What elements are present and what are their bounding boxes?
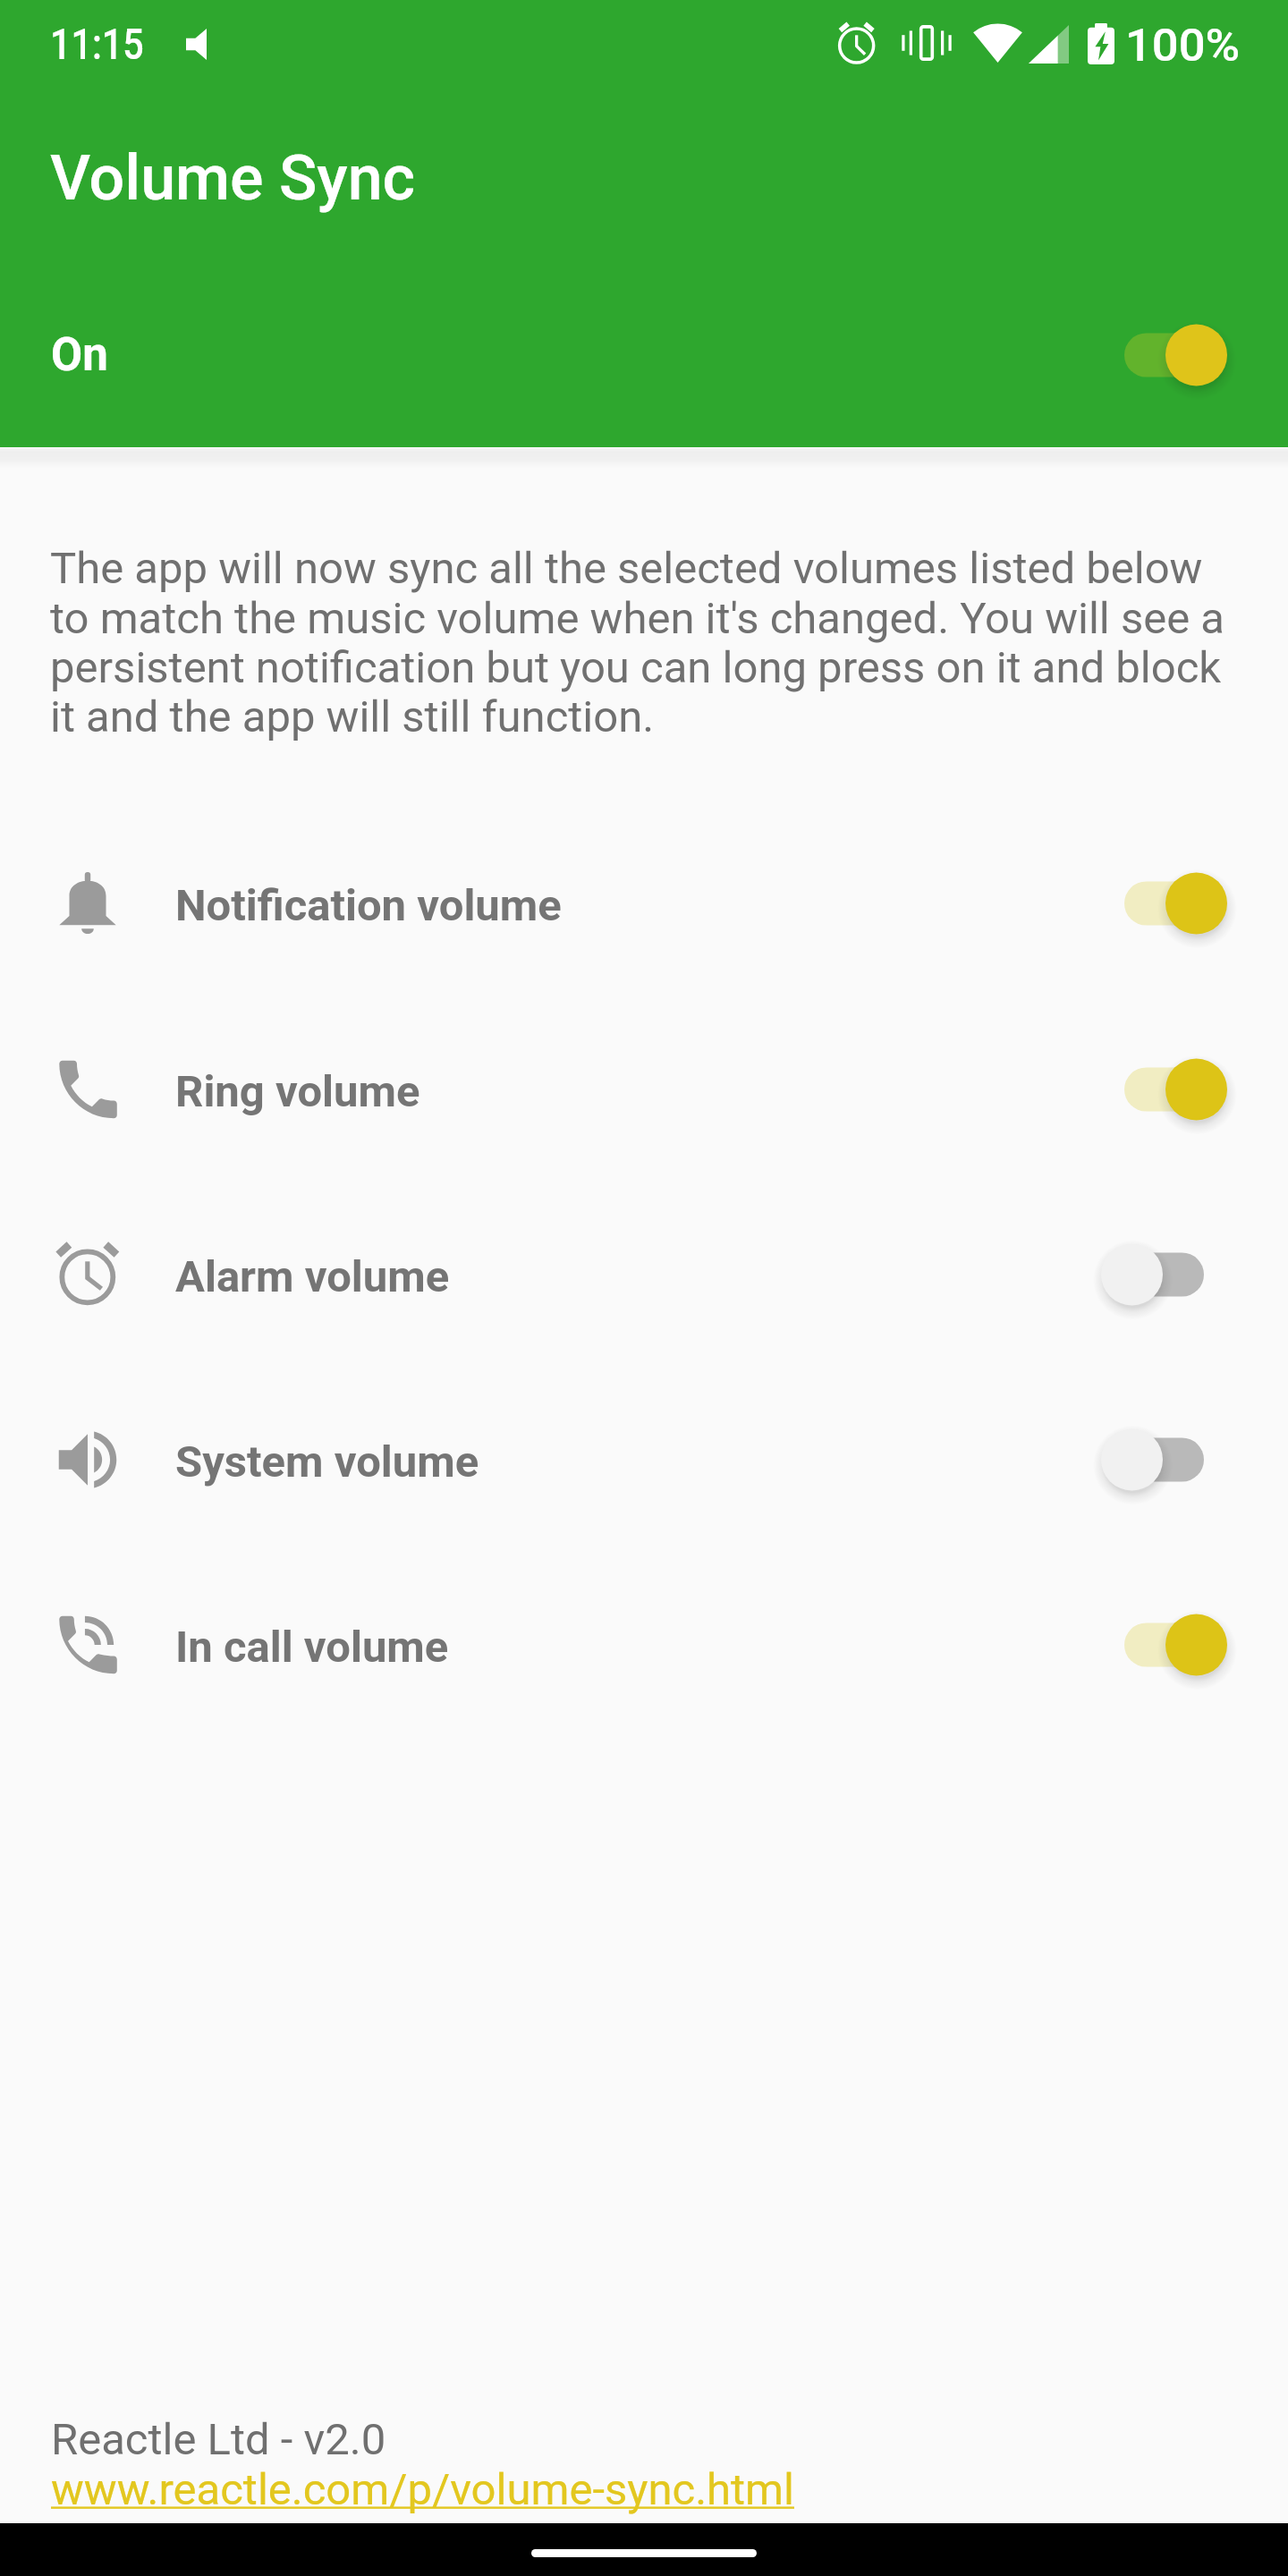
button[interactable]: In call volume <box>0 1552 1288 1737</box>
staticText: Ring volume <box>175 1066 420 1117</box>
staticText: 11:15 <box>50 19 144 69</box>
staticText: Reactle Ltd - v2.0 <box>51 2414 386 2465</box>
button[interactable]: Enabled <box>1124 1611 1204 1679</box>
button[interactable]: System volume <box>0 1367 1288 1552</box>
button[interactable]: Enabled <box>1124 321 1204 389</box>
staticText: The app will now sync all the selected v… <box>50 543 1235 742</box>
button[interactable]: Enabled <box>1124 1055 1204 1123</box>
staticText: System volume <box>175 1436 479 1487</box>
staticText: On <box>51 328 108 382</box>
staticText: In call volume <box>175 1622 449 1673</box>
button[interactable]: Alarm volume <box>0 1182 1288 1367</box>
button[interactable]: www.reactle.com/p/volume-sync.html <box>51 2464 794 2515</box>
button[interactable]: On <box>0 288 1288 422</box>
button[interactable]: Home <box>531 2549 757 2557</box>
button[interactable]: Notification volume <box>0 810 1288 996</box>
button[interactable]: Ring volume <box>0 996 1288 1182</box>
staticText: 100% <box>1125 20 1241 72</box>
staticText: Notification volume <box>175 880 562 931</box>
button[interactable]: Disabled <box>1124 1241 1204 1309</box>
staticText: Volume Sync <box>50 141 416 215</box>
button[interactable]: Enabled <box>1124 869 1204 937</box>
staticText: Alarm volume <box>175 1251 450 1302</box>
button[interactable]: Disabled <box>1124 1426 1204 1494</box>
